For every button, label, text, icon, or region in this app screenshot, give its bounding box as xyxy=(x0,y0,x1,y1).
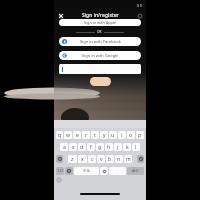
staticText: e xyxy=(76,132,79,139)
button[interactable]: e xyxy=(73,131,81,139)
button[interactable] xyxy=(59,64,141,74)
button[interactable]: i xyxy=(118,131,126,139)
staticText: o xyxy=(129,132,133,139)
staticText: c xyxy=(91,156,94,163)
staticText: i xyxy=(121,132,123,139)
staticText: 中英 xyxy=(83,169,90,173)
staticText: Sign in with Apple xyxy=(84,20,116,25)
button[interactable]: Sign in with Google xyxy=(59,51,141,60)
button[interactable]: l xyxy=(132,143,140,151)
button[interactable]: m xyxy=(124,155,132,163)
button[interactable]: t xyxy=(91,131,99,139)
button[interactable]: Sign in with Apple xyxy=(59,19,141,26)
staticText: p xyxy=(138,132,142,139)
button[interactable]: Switch keyboard xyxy=(65,167,73,175)
button[interactable]: x xyxy=(78,155,87,163)
staticText: t xyxy=(94,132,96,139)
staticText: m xyxy=(126,156,131,163)
button[interactable]: g xyxy=(96,143,104,151)
staticText: q xyxy=(58,132,62,139)
button[interactable]: o xyxy=(127,131,135,139)
button[interactable]: h xyxy=(105,143,113,151)
button[interactable]: Shift xyxy=(56,155,63,163)
staticText: u xyxy=(111,132,115,139)
button[interactable]: f xyxy=(87,143,95,151)
button[interactable]: k xyxy=(123,143,131,151)
button[interactable]: . xyxy=(109,167,126,175)
staticText: Sign in with Google xyxy=(82,53,119,58)
staticText: a xyxy=(63,144,66,151)
staticText: d xyxy=(80,144,84,151)
staticText: 123 xyxy=(58,169,63,173)
button[interactable]: s xyxy=(69,143,77,151)
staticText: h xyxy=(107,144,111,151)
staticText: Sign in with Facebook xyxy=(80,39,121,44)
button[interactable]: Sign in with Facebook xyxy=(59,37,141,46)
button[interactable]: n xyxy=(115,155,123,163)
staticText: . xyxy=(117,169,118,174)
staticText: n xyxy=(117,156,121,163)
button[interactable]: Help xyxy=(135,11,144,20)
button[interactable]: Voice input xyxy=(100,167,108,175)
staticText: OR xyxy=(97,30,102,34)
button[interactable]: j xyxy=(114,143,122,151)
staticText: s xyxy=(72,144,75,151)
button[interactable]: u xyxy=(109,131,117,139)
staticText: w xyxy=(66,132,70,139)
button[interactable]: Keyboard settings xyxy=(56,177,62,183)
staticText: g xyxy=(98,144,102,151)
staticText: z xyxy=(71,156,74,163)
button[interactable]: Close xyxy=(56,11,65,20)
button[interactable]: 123 xyxy=(56,167,64,175)
staticText: Sign in/register xyxy=(82,12,119,19)
button[interactable]: p xyxy=(136,131,144,139)
button[interactable]: a xyxy=(60,143,68,151)
staticText: j xyxy=(117,144,119,151)
button[interactable]: z xyxy=(68,155,77,163)
staticText: 换行 xyxy=(132,169,139,173)
button[interactable]: v xyxy=(97,155,105,163)
button[interactable]: d xyxy=(78,143,86,151)
button[interactable]: b xyxy=(106,155,114,163)
staticText: b xyxy=(108,156,112,163)
button[interactable]: 中英 xyxy=(74,167,99,175)
staticText: y xyxy=(103,132,106,139)
button[interactable]: q xyxy=(56,131,63,139)
staticText: l xyxy=(135,144,137,151)
button[interactable]: Backspace xyxy=(137,155,144,163)
button[interactable]: w xyxy=(64,131,72,139)
button[interactable]: r xyxy=(82,131,90,139)
staticText: k xyxy=(126,144,129,151)
button[interactable] xyxy=(90,77,111,86)
button[interactable]: y xyxy=(100,131,108,139)
button[interactable]: c xyxy=(88,155,96,163)
staticText: r xyxy=(85,132,88,139)
staticText: f xyxy=(90,144,92,151)
staticText: v xyxy=(100,156,103,163)
staticText: x xyxy=(81,156,84,163)
button[interactable]: 换行 xyxy=(127,167,144,175)
